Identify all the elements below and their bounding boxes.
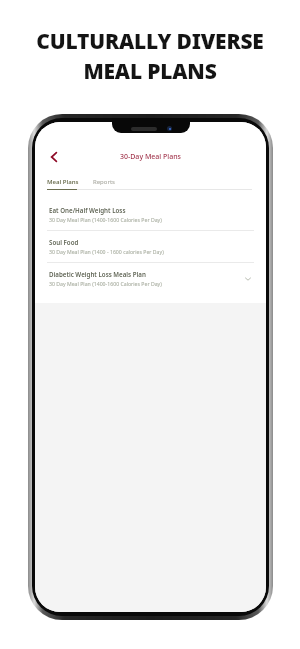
staticText: 30 Day Meal Plan (1400-1600 Calories Per… xyxy=(49,280,162,287)
staticText: Soul Food xyxy=(49,238,79,246)
staticText: 30 Day Meal Plan (1400-1600 Calories Per… xyxy=(49,216,162,223)
button[interactable]: Reports xyxy=(93,178,115,189)
button[interactable]: Diabetic Weight Loss Meals Plan xyxy=(35,263,266,294)
staticText: Diabetic Weight Loss Meals Plan xyxy=(49,270,146,278)
button[interactable]: Soul Food xyxy=(35,231,266,262)
button[interactable]: Meal Plans xyxy=(47,178,79,189)
button[interactable]: Expand xyxy=(242,273,254,285)
staticText: Reports xyxy=(93,178,115,186)
button[interactable]: Back xyxy=(43,146,65,168)
staticText: 30 Day Meal Plan (1400 - 1600 calories P… xyxy=(49,248,164,255)
staticText: Meal Plans xyxy=(47,178,79,186)
button[interactable]: Eat One/Half Weight Loss xyxy=(35,199,266,230)
staticText: CULTURALLY DIVERSE xyxy=(36,27,264,56)
staticText: MEAL PLANS xyxy=(83,57,217,86)
staticText: 30-Day Meal Plans xyxy=(120,152,182,162)
staticText: Eat One/Half Weight Loss xyxy=(49,206,126,214)
